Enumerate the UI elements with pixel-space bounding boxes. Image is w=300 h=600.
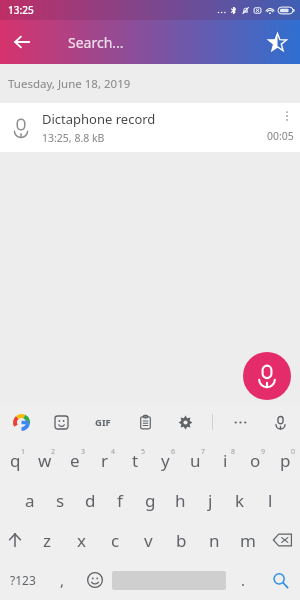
staticText: y — [161, 449, 170, 472]
button[interactable]: , — [46, 560, 78, 600]
button[interactable]: . — [226, 560, 260, 600]
staticText: 00:05 — [267, 129, 294, 143]
button[interactable]: k — [225, 480, 255, 520]
staticText: u — [190, 449, 201, 472]
button[interactable]: u — [180, 440, 210, 480]
button[interactable]: w — [30, 440, 60, 480]
staticText: d — [85, 489, 96, 512]
button[interactable]: More — [227, 409, 253, 435]
button[interactable]: Settings — [172, 409, 198, 435]
staticText: r — [101, 449, 109, 472]
staticText: v — [144, 529, 153, 552]
staticText: k — [235, 489, 245, 512]
button[interactable]: Stickers — [48, 409, 74, 435]
button[interactable]: c — [98, 520, 132, 560]
staticText: 2 — [51, 447, 56, 457]
staticText: 13:25, 8.8 kB — [42, 131, 105, 145]
button[interactable]: Back — [6, 26, 38, 58]
button[interactable]: Dictaphone record — [0, 103, 300, 152]
button[interactable]: m — [231, 520, 264, 560]
staticText: 6 — [171, 447, 176, 457]
staticText: . — [241, 570, 246, 590]
staticText: e — [70, 449, 80, 472]
staticText: 1 — [21, 447, 26, 457]
staticText: z — [43, 529, 51, 552]
button[interactable]: Search — [260, 560, 300, 600]
button[interactable]: d — [75, 480, 105, 520]
button[interactable]: q — [0, 440, 30, 480]
button[interactable]: j — [195, 480, 225, 520]
button[interactable]: ?123 — [0, 560, 46, 600]
button[interactable]: n — [198, 520, 231, 560]
button[interactable]: Record — [243, 352, 291, 400]
button[interactable]: y — [150, 440, 180, 480]
staticText: c — [111, 529, 120, 552]
button[interactable]: a — [15, 480, 45, 520]
staticText: Dictaphone record — [42, 110, 156, 128]
button[interactable]: i — [210, 440, 240, 480]
staticText: Tuesday, June 18, 2019 — [8, 76, 131, 92]
staticText: , — [60, 570, 65, 590]
staticText: o — [250, 449, 261, 472]
button[interactable]: v — [132, 520, 165, 560]
button[interactable]: Emoji — [78, 560, 112, 600]
button[interactable]: r — [90, 440, 120, 480]
staticText: q — [10, 449, 21, 472]
staticText: i — [223, 449, 228, 472]
staticText: p — [280, 449, 291, 472]
staticText: g — [145, 489, 156, 512]
button[interactable]: x — [64, 520, 98, 560]
button[interactable]: b — [165, 520, 198, 560]
button[interactable]: Clipboard — [132, 409, 158, 435]
button[interactable]: Voice input — [267, 409, 293, 435]
staticText: w — [38, 449, 52, 472]
staticText: 9 — [261, 447, 266, 457]
staticText: x — [77, 529, 86, 552]
staticText: GIF — [95, 416, 111, 429]
button[interactable]: Shift — [0, 520, 30, 560]
staticText: m — [240, 529, 256, 552]
button[interactable]: z — [30, 520, 64, 560]
staticText: 0 — [291, 447, 296, 457]
button[interactable]: h — [165, 480, 195, 520]
button[interactable]: e — [60, 440, 90, 480]
staticText: b — [176, 529, 187, 552]
button[interactable]: Google — [8, 409, 34, 435]
staticText: h — [175, 489, 186, 512]
staticText: s — [56, 489, 65, 512]
button[interactable]: f — [105, 480, 135, 520]
staticText: f — [117, 489, 123, 512]
staticText: 4 — [111, 447, 116, 457]
button[interactable]: s — [45, 480, 75, 520]
button[interactable]: Backspace — [264, 520, 300, 560]
staticText: Search... — [68, 33, 124, 52]
button[interactable]: g — [135, 480, 165, 520]
staticText: 13:25 — [8, 3, 34, 17]
staticText: 8 — [231, 447, 236, 457]
staticText: n — [209, 529, 220, 552]
button[interactable]: Favorites — [260, 25, 294, 59]
button[interactable]: More options — [274, 103, 300, 129]
staticText: 5 — [141, 447, 146, 457]
staticText: l — [268, 489, 273, 512]
button[interactable]: GIF — [88, 407, 118, 437]
staticText: j — [208, 489, 213, 512]
staticText: a — [25, 489, 35, 512]
button[interactable]: p — [270, 440, 300, 480]
staticText: ?123 — [10, 572, 36, 588]
staticText: t — [132, 449, 139, 472]
button[interactable]: t — [120, 440, 150, 480]
staticText: 7 — [201, 447, 206, 457]
staticText: 3 — [81, 447, 86, 457]
button[interactable]: o — [240, 440, 270, 480]
button[interactable]: l — [255, 480, 285, 520]
